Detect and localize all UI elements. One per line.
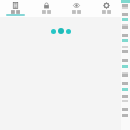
button[interactable] — [91, 0, 121, 17]
button[interactable] — [31, 0, 61, 17]
button[interactable] — [61, 0, 91, 17]
button[interactable] — [0, 0, 31, 17]
